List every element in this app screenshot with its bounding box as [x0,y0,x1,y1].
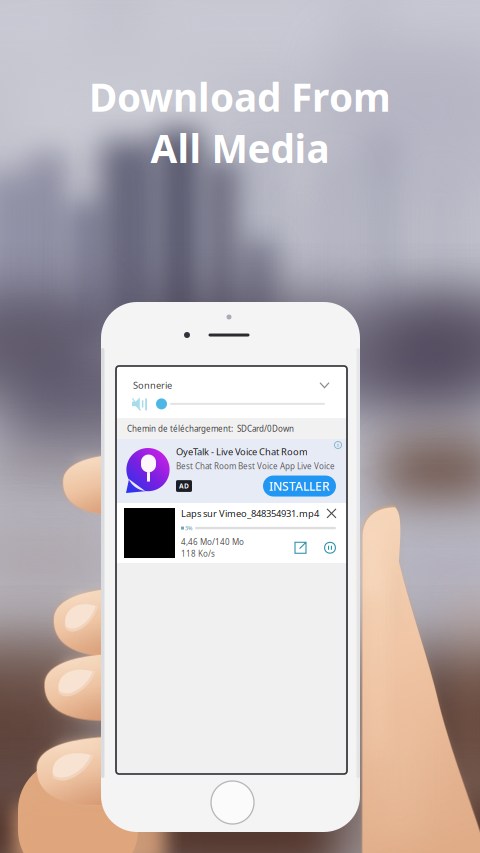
staticText: OyeTalk - Live Voice Chat Room [176,445,308,458]
staticText: 3% [185,524,192,532]
button[interactable]: Pause download [324,542,336,554]
staticText: 118 Ko/s [181,548,215,559]
staticText: INSTALLER [269,478,330,494]
button[interactable]: INSTALLER [263,475,336,496]
staticText: Download From [89,71,391,122]
staticText: Chemin de téléchargement: SDCard/0Down [127,423,294,434]
staticText: 4,46 Mo/140 Mo [181,537,244,547]
button[interactable]: Cancel download [327,509,336,518]
staticText: All Media [150,122,329,174]
button[interactable]: Sonnerie [116,366,347,393]
staticText: Laps sur Vimeo_848354931.mp4 [181,507,319,520]
button[interactable]: Open file [295,542,306,553]
staticText: AD [179,482,189,490]
staticText: Sonnerie [133,379,172,391]
staticText: Best Chat Room Best Voice App Live Voice [176,461,335,471]
